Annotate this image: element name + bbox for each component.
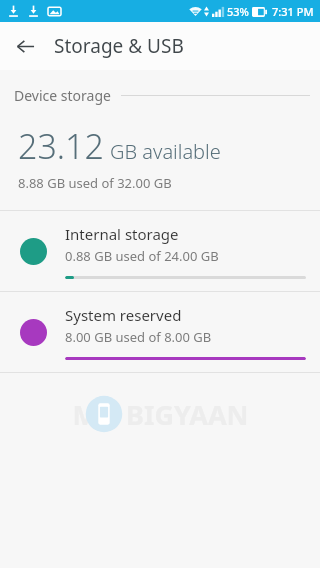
staticText: Device storage xyxy=(14,86,111,105)
button[interactable]: Internal storage xyxy=(0,211,320,291)
staticText: M BIGYAAN xyxy=(72,396,249,433)
staticText: 53% xyxy=(227,4,249,19)
staticText: Storage & USB xyxy=(54,33,184,59)
staticText: Internal storage xyxy=(65,224,179,244)
staticText: 8.88 GB used of 32.00 GB xyxy=(18,174,172,192)
staticText: 0.88 GB used of 24.00 GB xyxy=(65,247,219,265)
button[interactable]: System reserved xyxy=(0,292,320,372)
staticText: 7:31 PM xyxy=(272,4,314,19)
staticText: GB available xyxy=(110,138,221,165)
staticText: 8.00 GB used of 8.00 GB xyxy=(65,328,212,346)
button[interactable]: Back xyxy=(6,27,44,65)
staticText: 23.12 xyxy=(18,123,104,169)
staticText: System reserved xyxy=(65,305,182,325)
